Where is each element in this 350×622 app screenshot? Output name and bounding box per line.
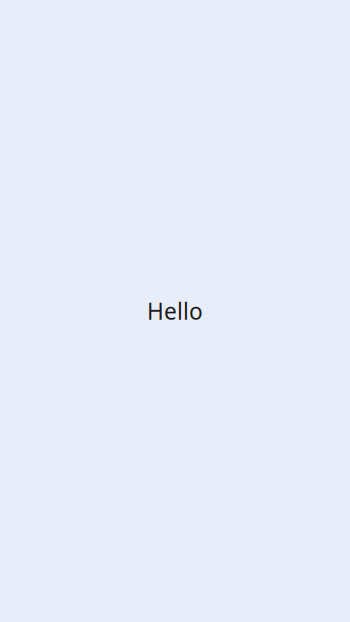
staticText: Hello: [147, 296, 203, 326]
